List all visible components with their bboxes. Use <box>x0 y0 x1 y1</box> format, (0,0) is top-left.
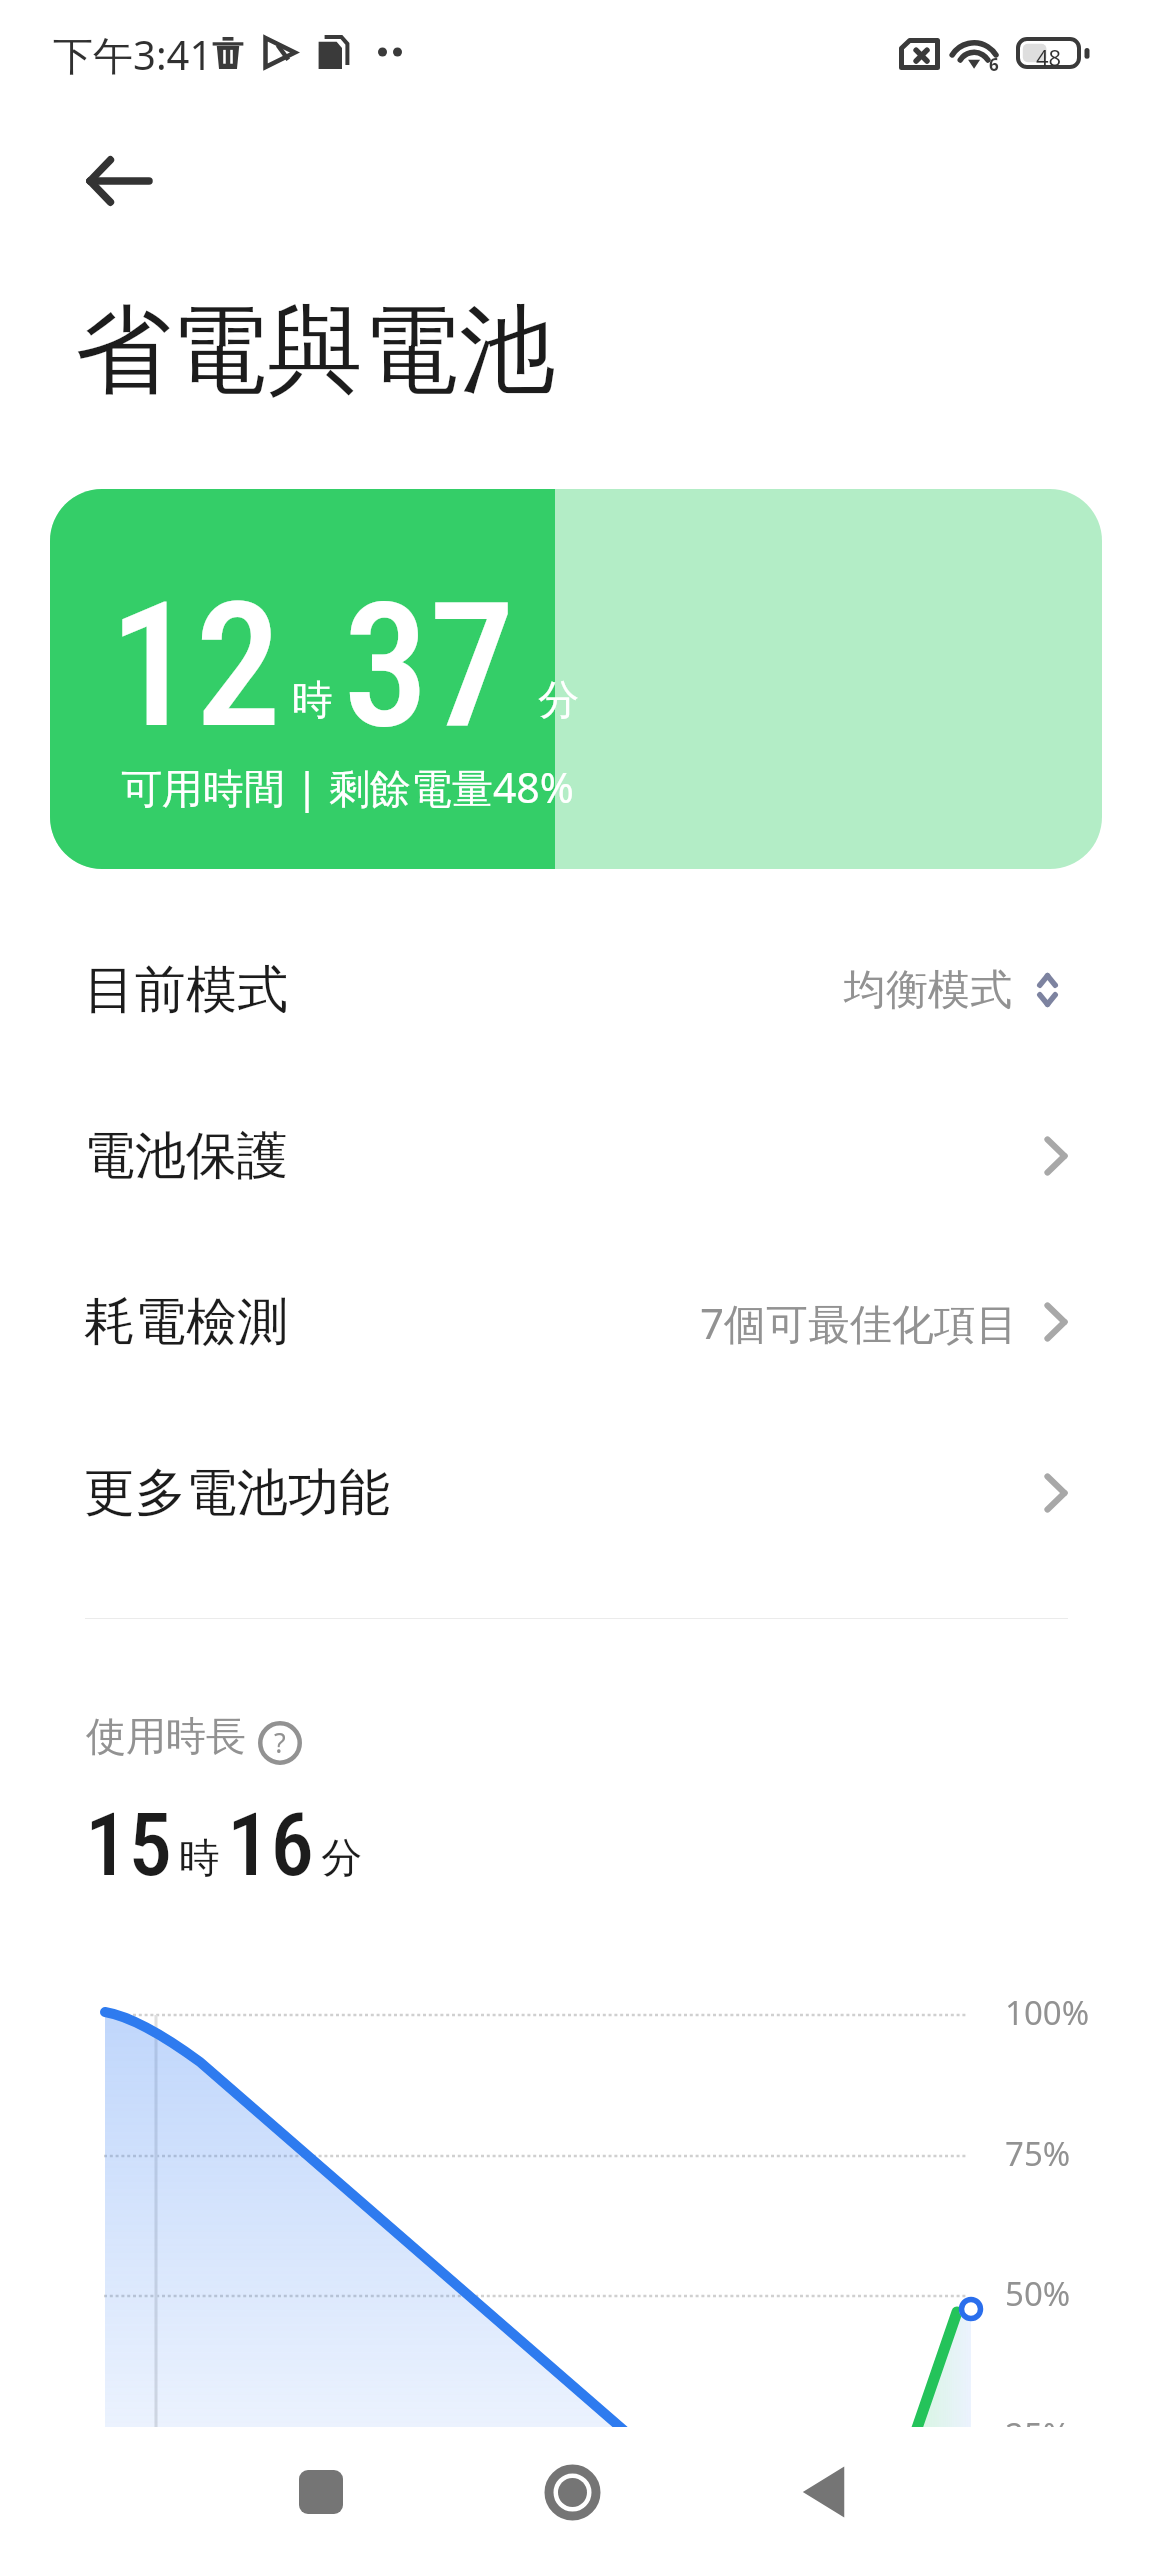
staticText: 12 <box>109 565 281 767</box>
staticText: 時 <box>292 675 333 727</box>
staticText: 目前模式 <box>84 958 288 1022</box>
button[interactable]: Back <box>759 2427 889 2557</box>
button[interactable]: 耗電檢測 <box>0 1239 1152 1405</box>
staticText: 省電與電池 <box>75 291 555 412</box>
button[interactable]: 更多電池功能 <box>0 1410 1152 1576</box>
staticText: 時 <box>179 1833 220 1885</box>
staticText: 分 <box>321 1833 362 1885</box>
staticText: 48 <box>1036 42 1062 72</box>
staticText: 下午3:41 <box>53 27 213 82</box>
staticText: 耗電檢測 <box>84 1290 288 1354</box>
button[interactable]: Back <box>55 117 183 245</box>
staticText: 100% <box>1005 1990 1090 2035</box>
staticText: 均衡模式 <box>844 964 1012 1017</box>
staticText: 25% <box>1005 2412 1071 2457</box>
staticText: 75% <box>1005 2131 1071 2176</box>
staticText: 37 <box>343 565 515 767</box>
staticText: 16 <box>227 1794 314 1896</box>
staticText: 分 <box>538 675 579 727</box>
staticText: 使用時長 <box>86 1711 246 1761</box>
button[interactable]: Recent apps <box>256 2427 386 2557</box>
staticText: 50% <box>1005 2271 1071 2316</box>
button[interactable]: Home <box>507 2427 637 2557</box>
staticText: 15 <box>85 1794 172 1896</box>
staticText: 6 <box>989 53 999 76</box>
button[interactable]: 12 <box>50 489 1102 869</box>
staticText: ? <box>274 1724 286 1761</box>
button[interactable]: 目前模式 <box>0 907 1152 1073</box>
staticText: 電池保護 <box>84 1124 288 1188</box>
staticText: 可用時間 | 剩餘電量48% <box>121 759 574 815</box>
staticText: 更多電池功能 <box>84 1461 390 1525</box>
button[interactable]: 電池保護 <box>0 1073 1152 1239</box>
staticText: 7個可最佳化項目 <box>700 1294 1019 1351</box>
